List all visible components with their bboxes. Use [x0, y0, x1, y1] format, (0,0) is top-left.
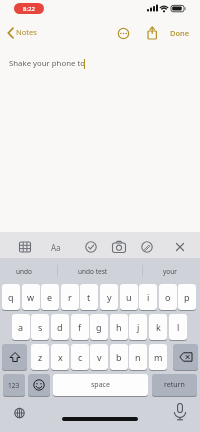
- button[interactable]: your: [146, 260, 194, 282]
- staticText: l: [177, 321, 180, 333]
- staticText: t: [87, 291, 91, 303]
- staticText: u: [126, 291, 132, 303]
- button[interactable]: z: [31, 344, 49, 370]
- button[interactable]: [171, 402, 189, 422]
- staticText: return: [164, 380, 185, 390]
- staticText: your: [163, 267, 177, 276]
- staticText: o: [165, 291, 171, 303]
- staticText: q: [8, 291, 14, 303]
- staticText: z: [38, 351, 43, 363]
- staticText: h: [116, 321, 122, 333]
- staticText: f: [78, 321, 82, 333]
- staticText: d: [57, 321, 63, 333]
- button[interactable]: d: [51, 314, 69, 340]
- button[interactable]: u: [120, 284, 138, 310]
- staticText: p: [184, 291, 190, 303]
- button[interactable]: x: [51, 344, 69, 370]
- button[interactable]: w: [22, 284, 40, 310]
- staticText: c: [78, 351, 83, 363]
- button[interactable]: q: [2, 284, 20, 310]
- button[interactable]: [146, 26, 158, 40]
- button[interactable]: m: [149, 344, 167, 370]
- button[interactable]: j: [129, 314, 147, 340]
- staticText: 123: [8, 381, 20, 390]
- button[interactable]: o: [159, 284, 177, 310]
- button[interactable]: y: [100, 284, 118, 310]
- button[interactable]: k: [149, 314, 167, 340]
- staticText: Shake your phone to: [9, 58, 85, 69]
- button[interactable]: [111, 240, 127, 254]
- staticText: Done: [170, 28, 190, 38]
- button[interactable]: g: [90, 314, 108, 340]
- button[interactable]: [173, 344, 198, 370]
- button[interactable]: undo test: [60, 260, 126, 282]
- button[interactable]: n: [129, 344, 147, 370]
- button[interactable]: [2, 344, 27, 370]
- button[interactable]: return: [152, 374, 197, 396]
- staticText: x: [58, 351, 63, 363]
- staticText: i: [147, 291, 150, 303]
- button[interactable]: b: [110, 344, 128, 370]
- staticText: n: [135, 351, 141, 363]
- button[interactable]: [17, 240, 33, 254]
- button[interactable]: [84, 240, 98, 254]
- staticText: a: [18, 321, 24, 333]
- button[interactable]: v: [90, 344, 108, 370]
- staticText: undo test: [78, 267, 108, 276]
- staticText: s: [38, 321, 43, 333]
- staticText: r: [68, 291, 72, 303]
- button[interactable]: [173, 240, 187, 254]
- staticText: w: [27, 291, 35, 303]
- button[interactable]: Notes: [4, 25, 52, 41]
- staticText: undo: [16, 267, 32, 276]
- button[interactable]: l: [169, 314, 187, 340]
- button[interactable]: p: [178, 284, 196, 310]
- staticText: k: [156, 321, 161, 333]
- button[interactable]: e: [41, 284, 59, 310]
- staticText: v: [97, 351, 102, 363]
- staticText: y: [107, 291, 112, 303]
- staticText: Notes: [16, 27, 37, 37]
- staticText: g: [96, 321, 102, 333]
- button[interactable]: i: [139, 284, 157, 310]
- button[interactable]: t: [80, 284, 98, 310]
- staticText: b: [116, 351, 122, 363]
- button[interactable]: c: [71, 344, 89, 370]
- button[interactable]: [140, 240, 154, 254]
- staticText: m: [154, 351, 163, 363]
- button[interactable]: [28, 374, 50, 396]
- staticText: Aa: [51, 242, 61, 253]
- button[interactable]: [10, 404, 28, 422]
- button[interactable]: space: [53, 374, 148, 396]
- button[interactable]: h: [110, 314, 128, 340]
- button[interactable]: [117, 27, 130, 40]
- button[interactable]: f: [71, 314, 89, 340]
- staticText: space: [91, 380, 110, 390]
- button[interactable]: s: [31, 314, 49, 340]
- staticText: j: [137, 321, 140, 333]
- button[interactable]: a: [12, 314, 30, 340]
- staticText: 8:22: [23, 5, 35, 13]
- button[interactable]: undo: [2, 260, 46, 282]
- staticText: e: [47, 291, 53, 303]
- button[interactable]: Done: [164, 26, 196, 40]
- button[interactable]: 123: [3, 374, 25, 396]
- button[interactable]: r: [61, 284, 79, 310]
- button[interactable]: Aa: [48, 240, 64, 254]
